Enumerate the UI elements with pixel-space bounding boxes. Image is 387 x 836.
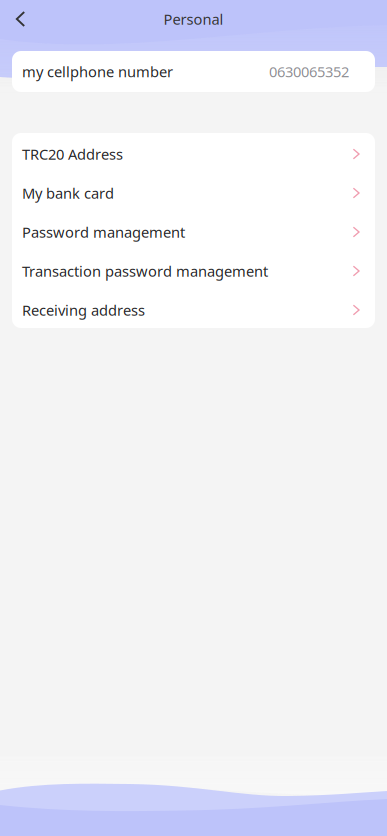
button[interactable]: TRC20 Address	[12, 133, 375, 172]
staticText: 0630065352	[269, 62, 349, 81]
button[interactable]: Back	[0, 0, 38, 38]
staticText: Transaction password management	[22, 261, 268, 281]
staticText: TRC20 Address	[22, 144, 123, 164]
button[interactable]: Receiving address	[12, 289, 375, 328]
staticText: Password management	[22, 222, 185, 242]
button[interactable]: Password management	[12, 211, 375, 250]
staticText: Personal	[163, 9, 223, 29]
button[interactable]: My bank card	[12, 172, 375, 211]
staticText: my cellphone number	[22, 62, 173, 81]
staticText: Receiving address	[22, 300, 145, 320]
button[interactable]: Transaction password management	[12, 250, 375, 289]
staticText: My bank card	[22, 183, 114, 203]
button[interactable]: my cellphone number	[12, 51, 375, 92]
